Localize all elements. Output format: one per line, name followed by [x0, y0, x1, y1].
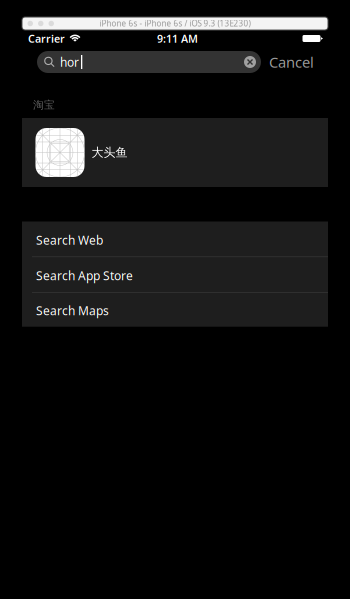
- staticText: 淘宝: [33, 98, 55, 111]
- staticText: hor: [60, 54, 79, 70]
- button[interactable]: 大头鱼: [22, 118, 328, 187]
- staticText: 9:11 AM: [157, 31, 198, 46]
- staticText: Cancel: [269, 52, 314, 72]
- staticText: 大头鱼: [91, 145, 127, 160]
- staticText: Carrier: [28, 31, 65, 46]
- button[interactable]: Clear search text: [241, 51, 259, 73]
- button[interactable]: Cancel: [269, 51, 314, 73]
- staticText: iPhone 6s - iPhone 6s / iOS 9.3 (13E230): [99, 18, 250, 29]
- staticText: Search App Store: [36, 268, 133, 283]
- staticText: Search Maps: [36, 303, 109, 319]
- button[interactable]: Search Maps: [22, 293, 328, 327]
- button[interactable]: Search App Store: [22, 257, 328, 292]
- button[interactable]: Search Web: [22, 221, 328, 256]
- staticText: Search Web: [36, 232, 103, 248]
